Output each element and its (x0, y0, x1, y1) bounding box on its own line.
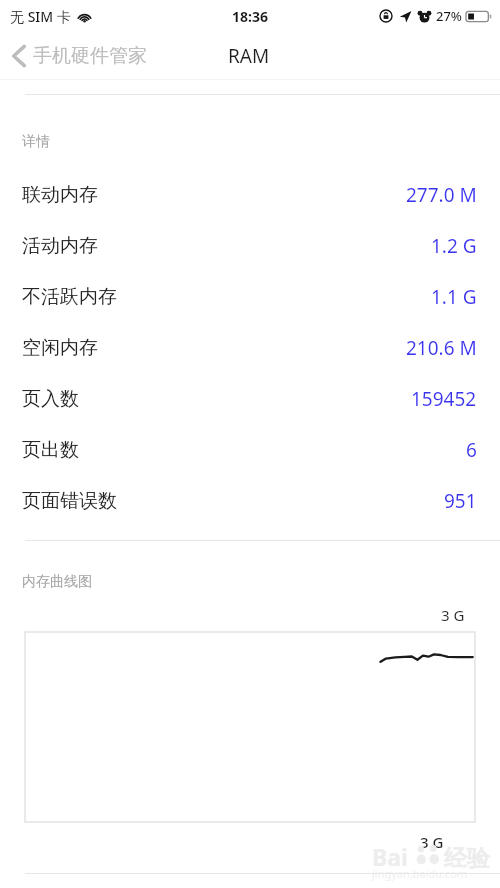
staticText: Bai 经验 (372, 841, 490, 872)
button[interactable]: 不活跃内存 (0, 271, 500, 322)
staticText: 18:36 (232, 7, 268, 26)
staticText: 页面错误数 (22, 489, 117, 513)
staticText: 951 (444, 488, 477, 514)
staticText: 页出数 (22, 438, 79, 462)
staticText: 页入数 (22, 387, 79, 411)
button[interactable]: 页入数 (0, 373, 500, 424)
staticText: 联动内存 (22, 183, 98, 207)
staticText: 3 G (441, 605, 465, 625)
staticText: 空闲内存 (22, 336, 98, 360)
staticText: RAM (228, 43, 270, 69)
button[interactable]: 联动内存 (0, 169, 500, 220)
staticText: 不活跃内存 (22, 285, 117, 309)
button[interactable]: 活动内存 (0, 220, 500, 271)
staticText: 手机硬件管家 (33, 44, 147, 68)
button[interactable]: 页出数 (0, 424, 500, 475)
staticText: 1.2 G (431, 233, 477, 259)
button[interactable]: 页面错误数 (0, 475, 500, 526)
staticText: 277.0 M (406, 182, 477, 208)
staticText: 内存曲线图 (22, 573, 92, 591)
staticText: 无 SIM 卡 (10, 7, 71, 26)
staticText: 210.6 M (406, 335, 477, 361)
staticText: 详情 (22, 133, 50, 151)
staticText: 1.1 G (431, 284, 477, 310)
staticText: 27% (436, 7, 462, 25)
staticText: 159452 (411, 386, 477, 412)
staticText: jingyan.baidu.com (372, 866, 468, 881)
button[interactable]: Back to 手机硬件管家 (0, 38, 157, 74)
staticText: 3 G (420, 832, 444, 852)
staticText: 活动内存 (22, 234, 98, 258)
button[interactable]: 空闲内存 (0, 322, 500, 373)
staticText: 6 (466, 437, 477, 463)
